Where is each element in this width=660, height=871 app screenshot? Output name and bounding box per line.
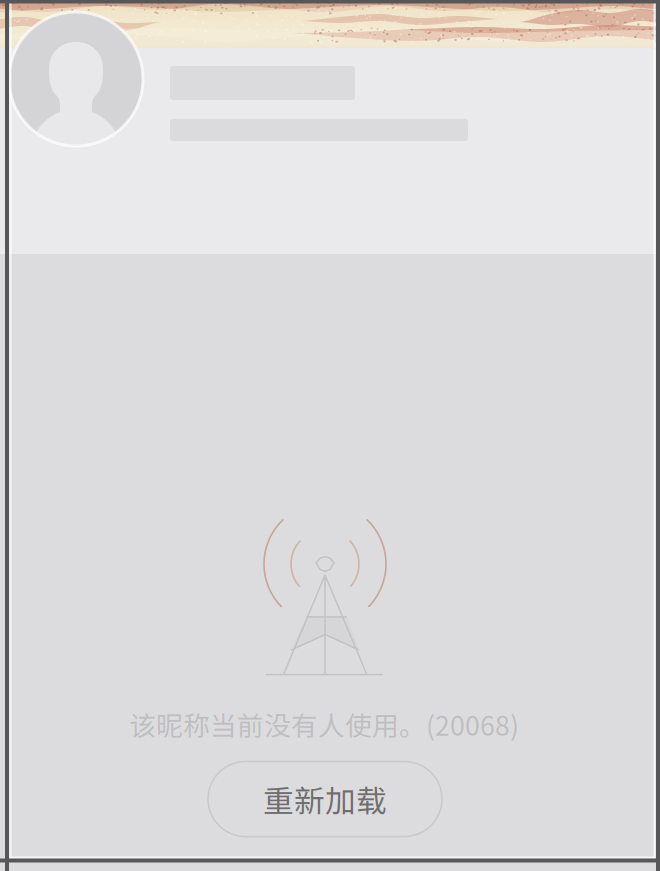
staticText: 该昵称当前没有人使用。(20068) [129, 705, 519, 743]
button[interactable]: 重新加载 [208, 761, 442, 836]
staticText: 重新加载 [263, 777, 387, 821]
